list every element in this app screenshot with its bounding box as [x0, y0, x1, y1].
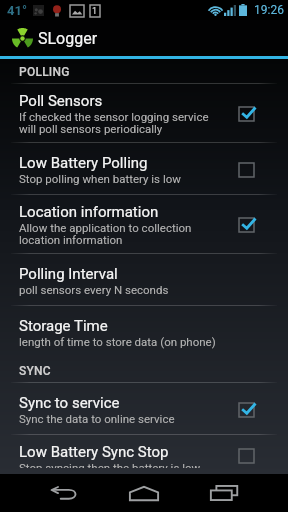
- button[interactable]: Unchecked: [239, 155, 270, 185]
- button[interactable]: Unchecked: [239, 443, 270, 468]
- staticText: SLogger: [38, 29, 98, 48]
- button[interactable]: Checked: [239, 395, 270, 425]
- staticText: poll sensors every N seconds: [19, 283, 169, 296]
- button[interactable]: Poll Sensors: [0, 84, 288, 142]
- staticText: SYNC: [19, 364, 51, 378]
- staticText: Low Battery Sync Stop: [19, 443, 169, 461]
- button[interactable]: Checked: [239, 99, 270, 129]
- button[interactable]: SLogger: [0, 20, 288, 56]
- button[interactable]: Home: [104, 474, 184, 512]
- staticText: length of time to store data (on phone): [19, 335, 216, 348]
- button[interactable]: Storage Time: [0, 306, 288, 357]
- staticText: 19:26: [254, 3, 284, 17]
- staticText: Sync the data to online service: [19, 412, 175, 425]
- staticText: Stop polling when battery is low: [19, 172, 181, 185]
- button[interactable]: Checked: [239, 210, 270, 240]
- staticText: Sync to service: [19, 394, 120, 412]
- button[interactable]: Location information: [0, 195, 288, 253]
- staticText: 1: [92, 6, 98, 17]
- staticText: Stop syncing then the battery is low: [19, 461, 201, 468]
- button[interactable]: Low Battery Sync Stop: [0, 435, 288, 474]
- button[interactable]: Back: [24, 474, 104, 512]
- button[interactable]: Low Battery Polling: [0, 143, 288, 194]
- button[interactable]: Recent apps: [184, 474, 264, 512]
- staticText: Storage Time: [19, 317, 108, 335]
- staticText: Low Battery Polling: [19, 154, 148, 172]
- staticText: POLLING: [19, 65, 70, 79]
- staticText: Location information: [19, 203, 159, 221]
- button[interactable]: Sync to service: [0, 383, 288, 434]
- staticText: Poll Sensors: [19, 92, 103, 110]
- staticText: Polling Interval: [19, 265, 118, 283]
- staticText: Allow the application to collection loca…: [19, 221, 192, 247]
- button[interactable]: Polling Interval: [0, 254, 288, 305]
- staticText: If checked the sensor logging service wi…: [19, 110, 209, 136]
- staticText: 41°: [7, 3, 27, 18]
